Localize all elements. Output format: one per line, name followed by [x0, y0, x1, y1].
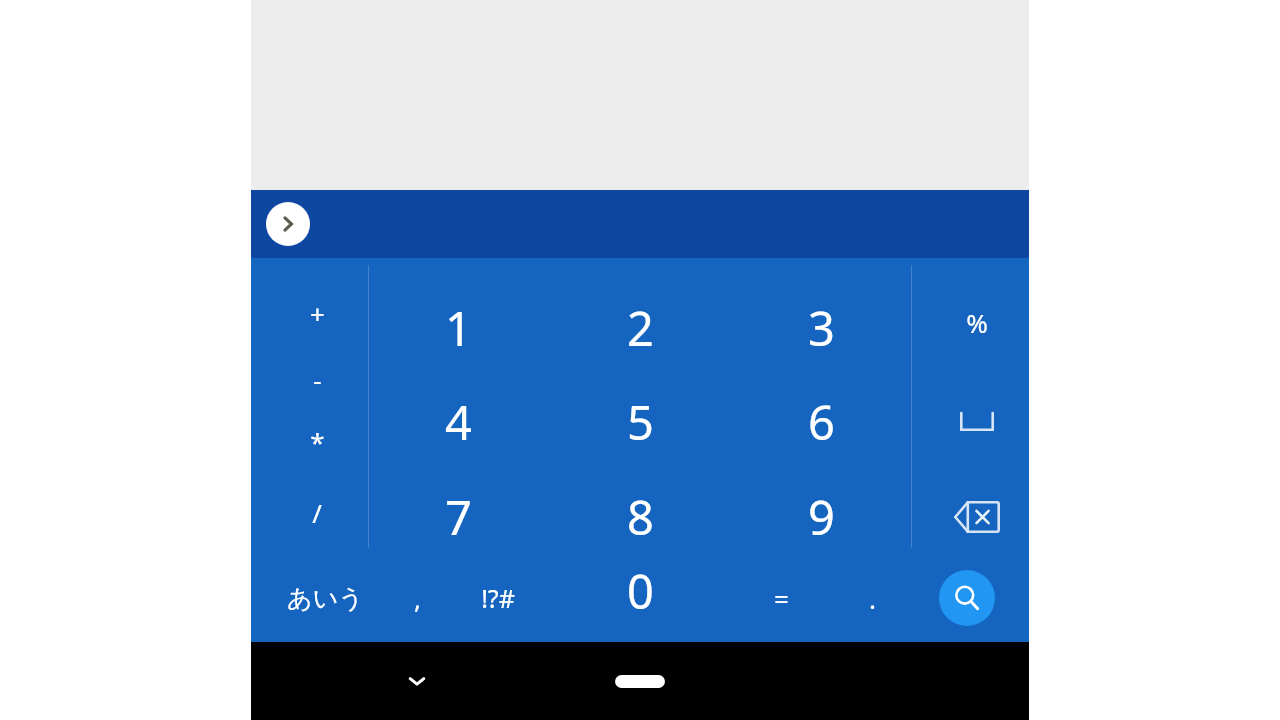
button[interactable]: 2: [580, 286, 700, 370]
staticText: 9: [808, 485, 835, 549]
staticText: =: [774, 581, 789, 616]
staticText: 3: [808, 296, 835, 360]
staticText: ,: [414, 581, 421, 616]
staticText: 7: [445, 485, 472, 549]
button[interactable]: Search: [927, 559, 1007, 637]
staticText: 1: [445, 296, 472, 360]
button[interactable]: 0: [580, 551, 700, 631]
staticText: 0: [627, 559, 654, 623]
staticText: 5: [627, 390, 654, 454]
button[interactable]: Home: [590, 666, 690, 696]
staticText: 8: [627, 485, 654, 549]
staticText: +: [310, 296, 325, 331]
staticText: /: [312, 495, 322, 530]
button[interactable]: ,: [385, 559, 449, 637]
button[interactable]: !?#: [456, 559, 540, 637]
button[interactable]: Expand suggestions: [266, 202, 310, 246]
button[interactable]: あいう: [265, 559, 385, 637]
button[interactable]: Hide keyboard: [393, 657, 441, 705]
button[interactable]: %: [937, 286, 1017, 358]
button[interactable]: /: [287, 476, 347, 548]
button[interactable]: 3: [761, 286, 881, 370]
button[interactable]: 8: [580, 475, 700, 559]
staticText: 6: [808, 390, 835, 454]
button[interactable]: 4: [398, 380, 518, 464]
staticText: 4: [445, 390, 472, 454]
staticText: -: [313, 362, 322, 397]
staticText: あいう: [287, 583, 364, 614]
button[interactable]: -: [287, 348, 347, 410]
button[interactable]: 6: [761, 380, 881, 464]
button[interactable]: 1: [398, 286, 518, 370]
button[interactable]: 5: [580, 380, 700, 464]
staticText: %: [966, 305, 988, 340]
staticText: 2: [627, 296, 654, 360]
button[interactable]: 9: [761, 475, 881, 559]
button[interactable]: .: [840, 559, 904, 637]
button[interactable]: Space: [937, 380, 1017, 464]
button[interactable]: +: [287, 282, 347, 344]
button[interactable]: *: [287, 410, 347, 472]
staticText: *: [310, 424, 325, 459]
button[interactable]: Backspace: [937, 475, 1017, 559]
button[interactable]: =: [749, 559, 813, 637]
button[interactable]: 7: [398, 475, 518, 559]
staticText: .: [869, 581, 876, 616]
staticText: !?#: [481, 581, 515, 615]
